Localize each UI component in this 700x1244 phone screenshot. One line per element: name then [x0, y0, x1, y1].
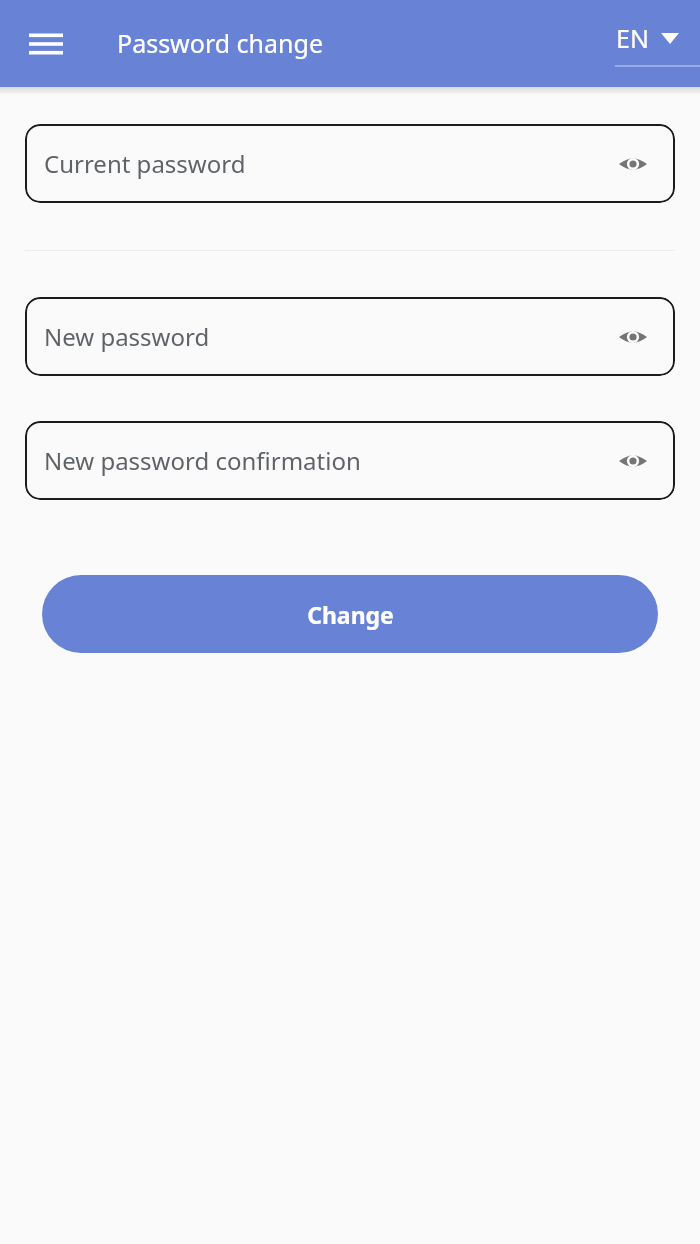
staticText: New password confirmation [44, 444, 361, 477]
button[interactable]: Current password [25, 124, 675, 203]
staticText: Password change [117, 26, 323, 60]
button[interactable]: Change [42, 575, 658, 653]
button[interactable]: New password confirmation [25, 421, 675, 500]
button[interactable]: New password [25, 297, 675, 376]
staticText: New password [44, 320, 210, 353]
button[interactable]: Show password [611, 315, 655, 359]
button[interactable]: Show password [611, 439, 655, 483]
staticText: Current password [44, 147, 246, 180]
button[interactable]: Show password [611, 142, 655, 186]
button[interactable]: EN [600, 21, 700, 67]
staticText: EN [616, 21, 649, 55]
button[interactable]: Open navigation menu [18, 16, 74, 72]
staticText: Change [307, 599, 394, 630]
